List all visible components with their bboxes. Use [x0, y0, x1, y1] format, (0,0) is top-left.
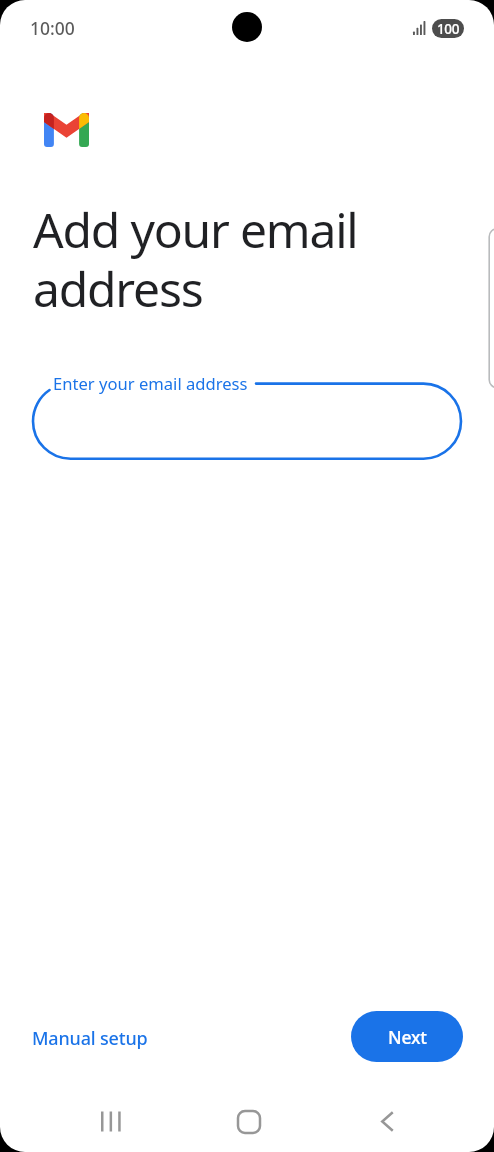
button[interactable]: Manual setup	[18, 1020, 162, 1057]
staticText: 10:00	[30, 16, 75, 40]
button[interactable]: Next	[351, 1011, 463, 1062]
button[interactable]: Back	[346, 1089, 428, 1152]
staticText: Next	[388, 1025, 427, 1049]
button[interactable]: Home	[208, 1089, 290, 1152]
staticText: Manual setup	[32, 1026, 148, 1051]
staticText: Add your email address	[33, 197, 358, 321]
button[interactable]: Recent apps	[70, 1089, 152, 1152]
staticText: Enter your email address	[53, 372, 248, 395]
staticText: 100	[437, 20, 459, 38]
